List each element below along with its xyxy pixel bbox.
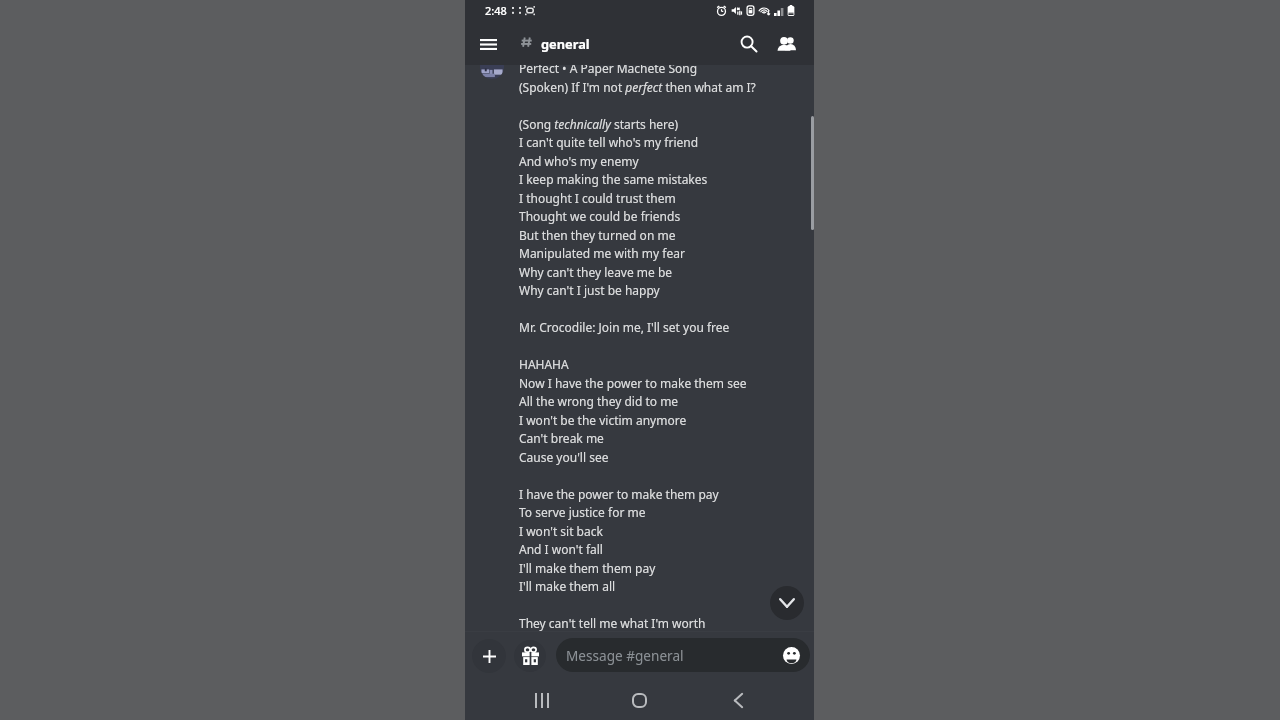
staticText: (Song technically starts here)	[519, 116, 679, 132]
staticText: Thought we could be friends	[519, 208, 681, 224]
staticText: 2:48	[485, 3, 507, 18]
staticText: And I won't fall	[519, 541, 603, 557]
button[interactable]: Recent apps	[529, 687, 555, 713]
button[interactable]: Home	[626, 687, 652, 713]
button[interactable]: Add attachment	[472, 639, 506, 673]
staticText: I won't sit back	[519, 523, 603, 539]
button[interactable]: Jump to bottom	[770, 586, 804, 620]
staticText: To serve justice for me	[519, 504, 646, 520]
staticText: Mr. Crocodile: Join me, I'll set you fre…	[519, 319, 730, 335]
staticText: Manipulated me with my fear	[519, 245, 685, 261]
staticText: Cause you'll see	[519, 449, 609, 465]
button[interactable]: Open emoji picker	[783, 647, 800, 664]
staticText: HAHAHA	[519, 356, 569, 372]
button[interactable]: Send a gift	[514, 640, 546, 672]
staticText: And who's my enemy	[519, 153, 639, 169]
staticText: Can't break me	[519, 430, 604, 446]
staticText: I keep making the same mistakes	[519, 171, 708, 187]
staticText: Now I have the power to make them see	[519, 375, 747, 391]
button[interactable]: general	[517, 26, 599, 60]
button[interactable]: Message #general	[556, 638, 810, 672]
staticText: I have the power to make them pay	[519, 486, 719, 502]
staticText: I can't quite tell who's my friend	[519, 134, 699, 150]
staticText: Perfect • A Paper Machete Song	[519, 65, 698, 76]
staticText: All the wrong they did to me	[519, 393, 679, 409]
button[interactable]: Search	[734, 29, 764, 59]
button[interactable]: Back	[725, 687, 751, 713]
staticText: They can't tell me what I'm worth	[519, 615, 706, 631]
staticText: Message #general	[566, 646, 684, 665]
button[interactable]: Show member list	[770, 29, 800, 59]
staticText: I'll make them them pay	[519, 560, 656, 576]
staticText: I'll make them all	[519, 578, 616, 594]
staticText: Why can't I just be happy	[519, 282, 660, 298]
staticText: Why can't they leave me be	[519, 264, 673, 280]
staticText: I thought I could trust them	[519, 190, 676, 206]
staticText: general	[541, 35, 590, 52]
staticText: I won't be the victim anymore	[519, 412, 687, 428]
button[interactable]: Open navigation menu	[471, 27, 505, 61]
staticText: But then they turned on me	[519, 227, 676, 243]
staticText: (Spoken) If I'm not perfect then what am…	[519, 79, 756, 95]
